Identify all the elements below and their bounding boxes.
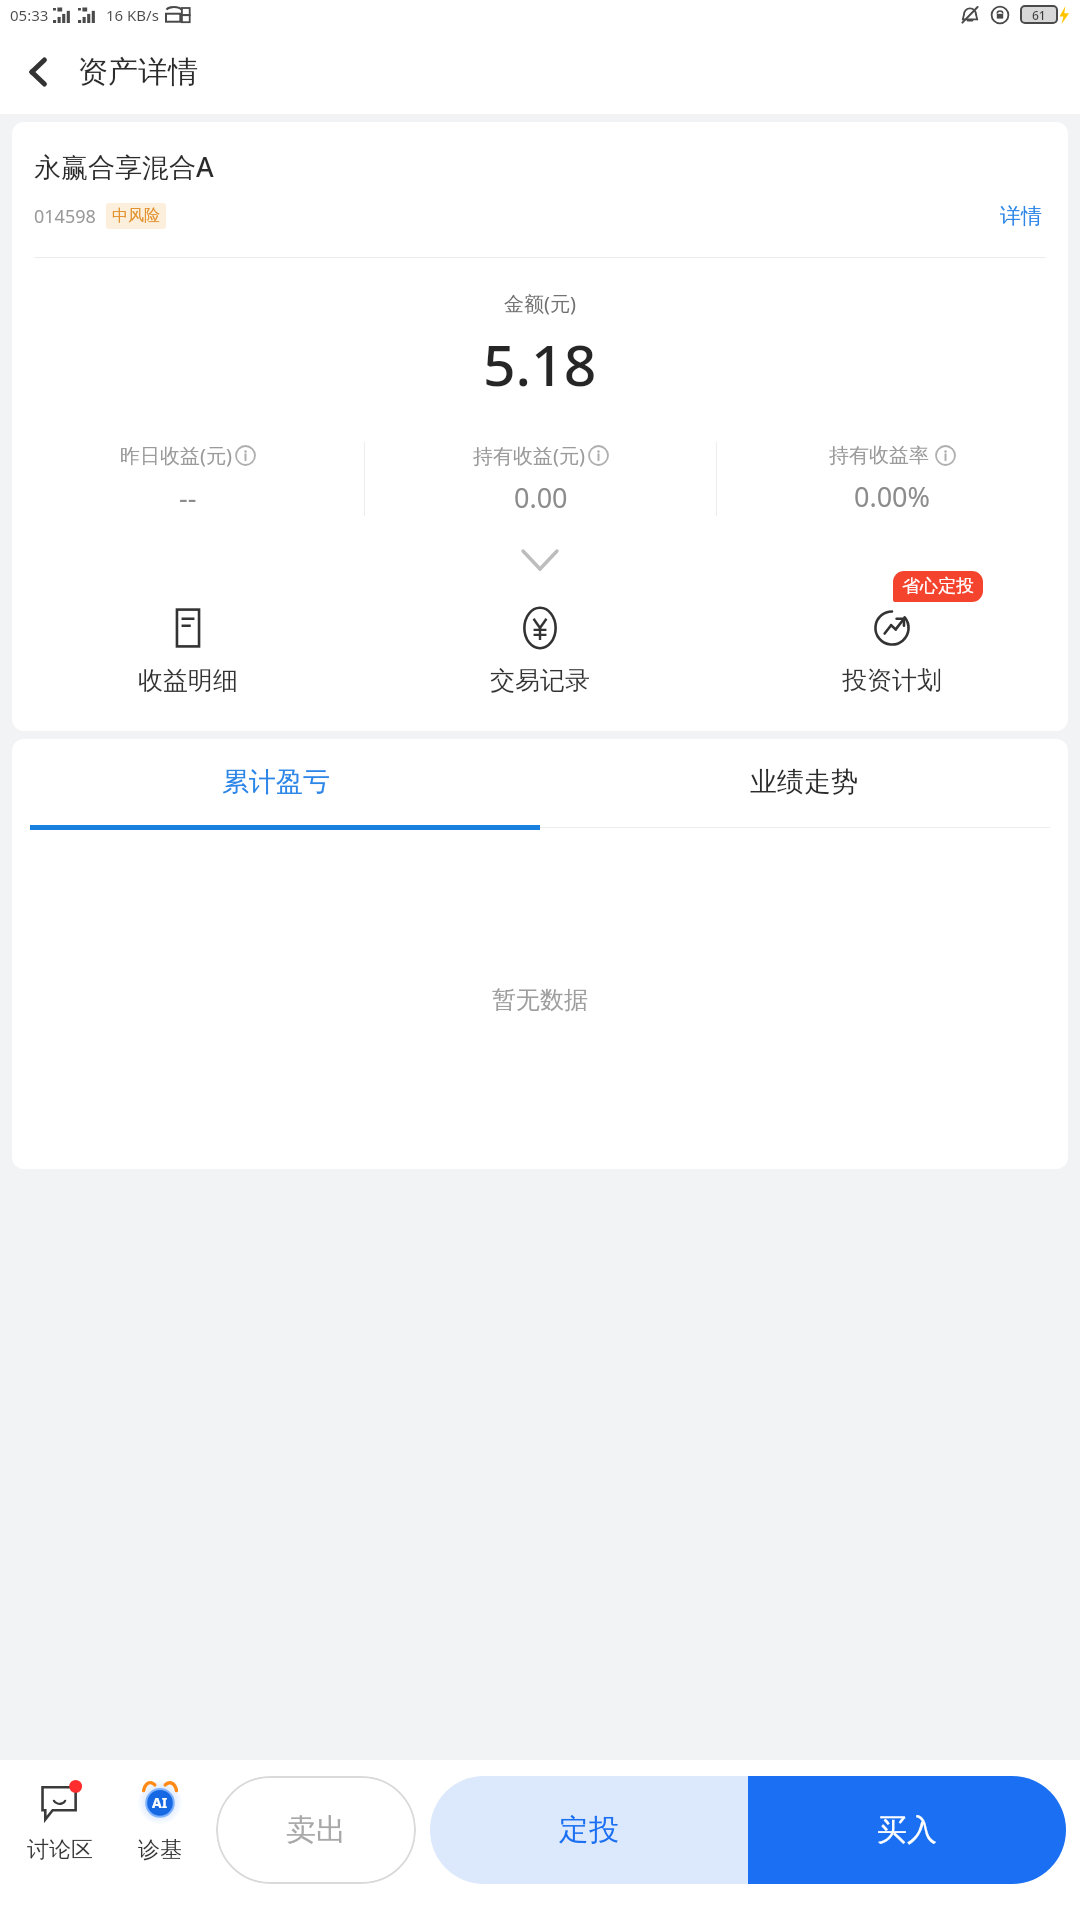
- staticText: 诊基: [138, 1836, 182, 1864]
- staticText: 投资计划: [842, 665, 942, 696]
- button[interactable]: Back: [0, 33, 78, 111]
- button[interactable]: 详情: [996, 199, 1046, 233]
- button[interactable]: AI: [110, 1776, 210, 1864]
- button[interactable]: 业绩走势: [540, 765, 1068, 799]
- button[interactable]: 收益明细: [12, 591, 364, 721]
- button[interactable]: 讨论区: [10, 1776, 110, 1864]
- button[interactable]: 交易记录: [364, 591, 716, 721]
- button[interactable]: 昨日收益(元): [12, 429, 364, 529]
- staticText: 昨日收益(元): [120, 442, 232, 469]
- staticText: 定投: [559, 1811, 619, 1849]
- button[interactable]: 定投: [430, 1776, 748, 1884]
- staticText: 详情: [1000, 203, 1042, 229]
- staticText: 累计盈亏: [222, 765, 330, 799]
- staticText: 014598: [34, 204, 96, 229]
- staticText: 暂无数据: [492, 985, 588, 1015]
- staticText: 持有收益率: [829, 443, 929, 468]
- staticText: AI: [152, 1793, 168, 1812]
- staticText: 持有收益(元): [473, 442, 585, 469]
- staticText: 永赢合享混合A: [34, 148, 214, 185]
- staticText: 资产详情: [78, 53, 198, 91]
- staticText: 收益明细: [138, 665, 238, 696]
- staticText: 买入: [877, 1811, 937, 1849]
- staticText: 中风险: [112, 206, 160, 226]
- button[interactable]: 持有收益率: [717, 429, 1068, 529]
- staticText: 0.00: [514, 479, 568, 516]
- staticText: 0.00%: [854, 478, 931, 515]
- staticText: 5.18: [483, 325, 597, 403]
- staticText: 05:33: [10, 5, 49, 25]
- staticText: 交易记录: [490, 665, 590, 696]
- staticText: 61: [1032, 7, 1046, 22]
- button[interactable]: 持有收益(元): [365, 429, 716, 529]
- staticText: 金额(元): [504, 290, 576, 317]
- staticText: 16 KB/s: [106, 5, 159, 25]
- staticText: 讨论区: [27, 1836, 93, 1864]
- button[interactable]: 累计盈亏: [12, 765, 540, 799]
- staticText: 卖出: [286, 1811, 346, 1849]
- staticText: 业绩走势: [750, 765, 858, 799]
- button[interactable]: 投资计划: [716, 591, 1068, 721]
- button[interactable]: Expand: [12, 543, 1068, 577]
- staticText: --: [179, 479, 197, 516]
- button[interactable]: 买入: [748, 1776, 1066, 1884]
- staticText: 省心定投: [902, 575, 974, 598]
- button[interactable]: 卖出: [216, 1776, 416, 1884]
